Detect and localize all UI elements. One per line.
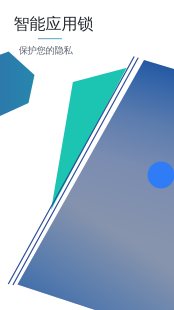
staticText: 保护您的隐私 <box>18 45 72 56</box>
button[interactable]: App list <box>147 161 174 188</box>
staticText: 智能应用锁 <box>13 14 93 34</box>
